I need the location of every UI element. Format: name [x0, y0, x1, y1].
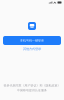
staticText: 本机号码一键登录	[20, 39, 44, 42]
staticText: 登录代表同意《用户协议》和《隐私政策》	[3, 84, 60, 87]
staticText: 中国移动提供认证服务	[17, 88, 47, 92]
button[interactable]: 其他方式登录	[23, 47, 41, 51]
button[interactable]: 本机号码一键登录	[3, 36, 61, 45]
staticText: 其他方式登录	[23, 47, 41, 51]
